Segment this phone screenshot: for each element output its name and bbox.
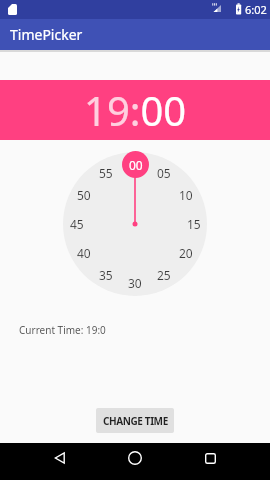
- staticText: 00: [129, 157, 143, 173]
- staticText: 19:00: [84, 83, 187, 137]
- button[interactable]: 05: [151, 164, 177, 182]
- button[interactable]: 50: [71, 186, 97, 204]
- staticText: 50: [77, 187, 91, 203]
- button[interactable]: 45: [64, 215, 90, 233]
- staticText: 15: [187, 216, 201, 232]
- button[interactable]: 20: [173, 244, 199, 262]
- button[interactable]: 10: [173, 186, 199, 204]
- button[interactable]: [195, 443, 225, 473]
- button[interactable]: 40: [71, 244, 97, 262]
- staticText: 30: [128, 275, 142, 291]
- button[interactable]: CHANGE TIME: [96, 408, 174, 433]
- button[interactable]: 35: [93, 266, 119, 284]
- staticText: 40: [77, 245, 91, 261]
- staticText: TimePicker: [10, 25, 83, 44]
- button[interactable]: 30: [122, 274, 148, 292]
- staticText: 45: [70, 216, 84, 232]
- button[interactable]: 00: [122, 151, 149, 178]
- staticText: 35: [99, 267, 113, 283]
- button[interactable]: 25: [151, 266, 177, 284]
- button[interactable]: [120, 443, 150, 473]
- staticText: Current Time: 19:0: [19, 323, 106, 337]
- staticText: 55: [99, 165, 113, 181]
- staticText: 20: [179, 245, 193, 261]
- staticText: 25: [157, 267, 171, 283]
- staticText: 6:02: [245, 2, 267, 17]
- staticText: CHANGE TIME: [103, 414, 168, 428]
- button[interactable]: 15: [181, 215, 207, 233]
- staticText: 05: [157, 165, 171, 181]
- staticText: 10: [179, 187, 193, 203]
- button[interactable]: [45, 443, 75, 473]
- button[interactable]: 55: [93, 164, 119, 182]
